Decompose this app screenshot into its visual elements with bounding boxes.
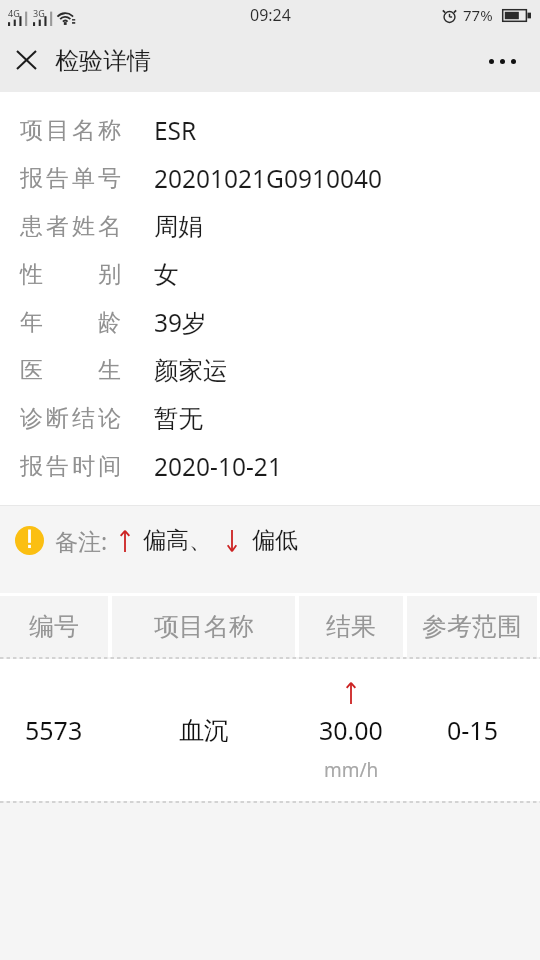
staticText: 别 [98,260,121,289]
staticText: 论 [98,404,121,433]
staticText: 者 [46,212,69,241]
staticText: 时 [72,452,95,481]
button[interactable]: 参考范围 [407,596,537,657]
staticText: 女 [154,259,179,290]
staticText: 3G [33,7,45,19]
staticText: 断 [46,404,69,433]
staticText: 0-15 [447,713,498,747]
staticText: 目 [46,116,69,145]
staticText: 间 [98,452,121,481]
staticText: 报 [20,164,43,193]
staticText: 参考范围 [422,611,522,642]
button[interactable]: 结果 [299,596,403,657]
staticText: 诊 [20,404,43,433]
staticText: 结果 [326,611,376,642]
staticText: ESR [154,114,197,147]
button[interactable]: Close [0,30,52,92]
staticText: 编号 [29,611,79,642]
staticText: 2020-10-21 [154,450,282,483]
staticText: 性 [20,260,43,289]
staticText: 患 [20,212,43,241]
staticText: 39岁 [154,306,207,339]
staticText: 龄 [98,308,121,337]
button[interactable]: 编号 [0,596,108,657]
staticText: 偏高、 [143,526,212,555]
staticText: 血沉 [179,715,229,746]
staticText: 医 [20,356,43,385]
button[interactable]: More options [475,30,529,92]
staticText: 报 [20,452,43,481]
staticText: 周娟 [154,211,203,242]
staticText: 20201021G0910040 [154,162,383,195]
staticText: 暂无 [154,403,203,434]
staticText: 名 [72,116,95,145]
staticText: 名 [98,212,121,241]
staticText: 姓 [72,212,95,241]
staticText: 4G [8,7,20,19]
staticText: 告 [46,452,69,481]
button[interactable]: 项目名称 [112,596,295,657]
staticText: 09:24 [250,4,291,26]
staticText: 号 [98,164,121,193]
staticText: 生 [98,356,121,385]
staticText: 30.00 [319,713,383,747]
staticText: 项 [20,116,43,145]
staticText: 单 [72,164,95,193]
staticText: 称 [98,116,121,145]
staticText: 结 [72,404,95,433]
staticText: 5573 [25,713,83,747]
staticText: 备注: [55,525,108,556]
staticText: 项目名称 [154,611,254,642]
staticText: 检验详情 [55,46,151,76]
staticText: mm/h [324,757,379,783]
staticText: 告 [46,164,69,193]
staticText: 颜家运 [154,355,228,386]
staticText: 年 [20,308,43,337]
staticText: 偏低 [252,526,298,555]
staticText: 77% [463,5,493,25]
